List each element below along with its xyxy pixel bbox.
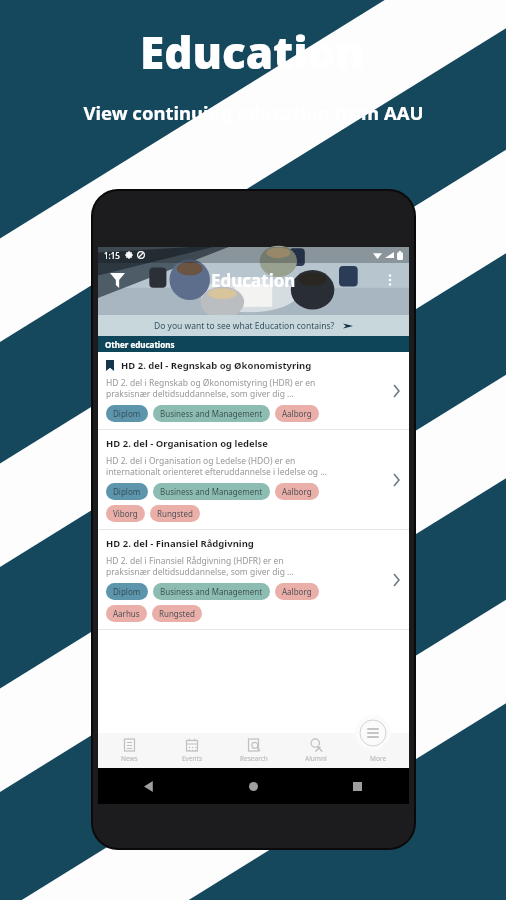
staticText: More bbox=[370, 754, 387, 763]
staticText: Aalborg bbox=[282, 486, 312, 497]
staticText: Rungsted bbox=[157, 508, 193, 519]
staticText: Diplom bbox=[113, 408, 141, 419]
staticText: Other educations bbox=[105, 339, 175, 350]
staticText: Business and Management bbox=[160, 408, 263, 419]
button[interactable]: HD 2. del - Organisation og ledelse bbox=[98, 430, 409, 529]
button[interactable]: Back bbox=[98, 768, 201, 804]
button[interactable]: Rungsted bbox=[152, 605, 202, 622]
staticText: View continuing education from AAU bbox=[83, 100, 424, 125]
button[interactable]: Aarhus bbox=[106, 605, 147, 622]
staticText: Diplom bbox=[113, 586, 141, 597]
button[interactable]: Diplom bbox=[106, 483, 148, 500]
staticText: Education bbox=[211, 269, 296, 292]
button[interactable]: Home bbox=[201, 768, 305, 804]
button[interactable]: Events bbox=[161, 733, 223, 768]
button[interactable]: News bbox=[98, 733, 161, 768]
staticText: Diplom bbox=[113, 486, 141, 497]
button[interactable]: Filter bbox=[105, 268, 129, 292]
staticText: Events bbox=[182, 754, 203, 763]
staticText: Aalborg bbox=[282, 586, 312, 597]
button[interactable]: Alumni bbox=[285, 733, 347, 768]
button[interactable]: Diplom bbox=[106, 405, 148, 422]
button[interactable]: Business and Management bbox=[153, 483, 270, 500]
button[interactable]: Viborg bbox=[106, 505, 145, 522]
staticText: HD 2. del i Regnskab og Økonomistyring (… bbox=[106, 377, 316, 399]
button[interactable]: Recents bbox=[305, 768, 409, 804]
staticText: Viborg bbox=[113, 508, 138, 519]
button[interactable]: HD 2. del - Finansiel Rådgivning bbox=[98, 530, 409, 629]
staticText: Rungsted bbox=[159, 608, 195, 619]
button[interactable]: Business and Management bbox=[153, 583, 270, 600]
staticText: News bbox=[121, 754, 138, 763]
staticText: HD 2. del - Regnskab og Økonomistyring bbox=[121, 359, 312, 372]
button[interactable]: HD 2. del - Regnskab og Økonomistyring bbox=[98, 352, 409, 429]
button[interactable]: Rungsted bbox=[150, 505, 200, 522]
button[interactable]: More menu bbox=[355, 715, 391, 750]
button[interactable]: Diplom bbox=[106, 583, 148, 600]
staticText: HD 2. del - Organisation og ledelse bbox=[106, 437, 268, 450]
staticText: Aalborg bbox=[282, 408, 312, 419]
button[interactable]: Aalborg bbox=[275, 405, 319, 422]
staticText: HD 2. del - Finansiel Rådgivning bbox=[106, 537, 254, 550]
staticText: Business and Management bbox=[160, 586, 263, 597]
button[interactable]: Business and Management bbox=[153, 405, 270, 422]
staticText: HD 2. del i Organisation og Ledelse (HDO… bbox=[106, 455, 328, 477]
button[interactable]: Aalborg bbox=[275, 583, 319, 600]
staticText: 1:15 bbox=[104, 250, 120, 261]
staticText: Education bbox=[140, 22, 366, 82]
button[interactable]: Research bbox=[223, 733, 285, 768]
staticText: HD 2. del i Finansiel Rådgivning (HDFR) … bbox=[106, 555, 294, 577]
button[interactable]: More options bbox=[378, 268, 402, 292]
button[interactable]: More bbox=[347, 733, 409, 768]
staticText: Aarhus bbox=[113, 608, 140, 619]
staticText: Research bbox=[240, 754, 268, 763]
staticText: Business and Management bbox=[160, 486, 263, 497]
staticText: Do you want to see what Education contai… bbox=[154, 320, 335, 332]
staticText: Alumni bbox=[305, 754, 327, 763]
button[interactable]: Aalborg bbox=[275, 483, 319, 500]
button[interactable]: Do you want to see what Education contai… bbox=[98, 315, 409, 336]
